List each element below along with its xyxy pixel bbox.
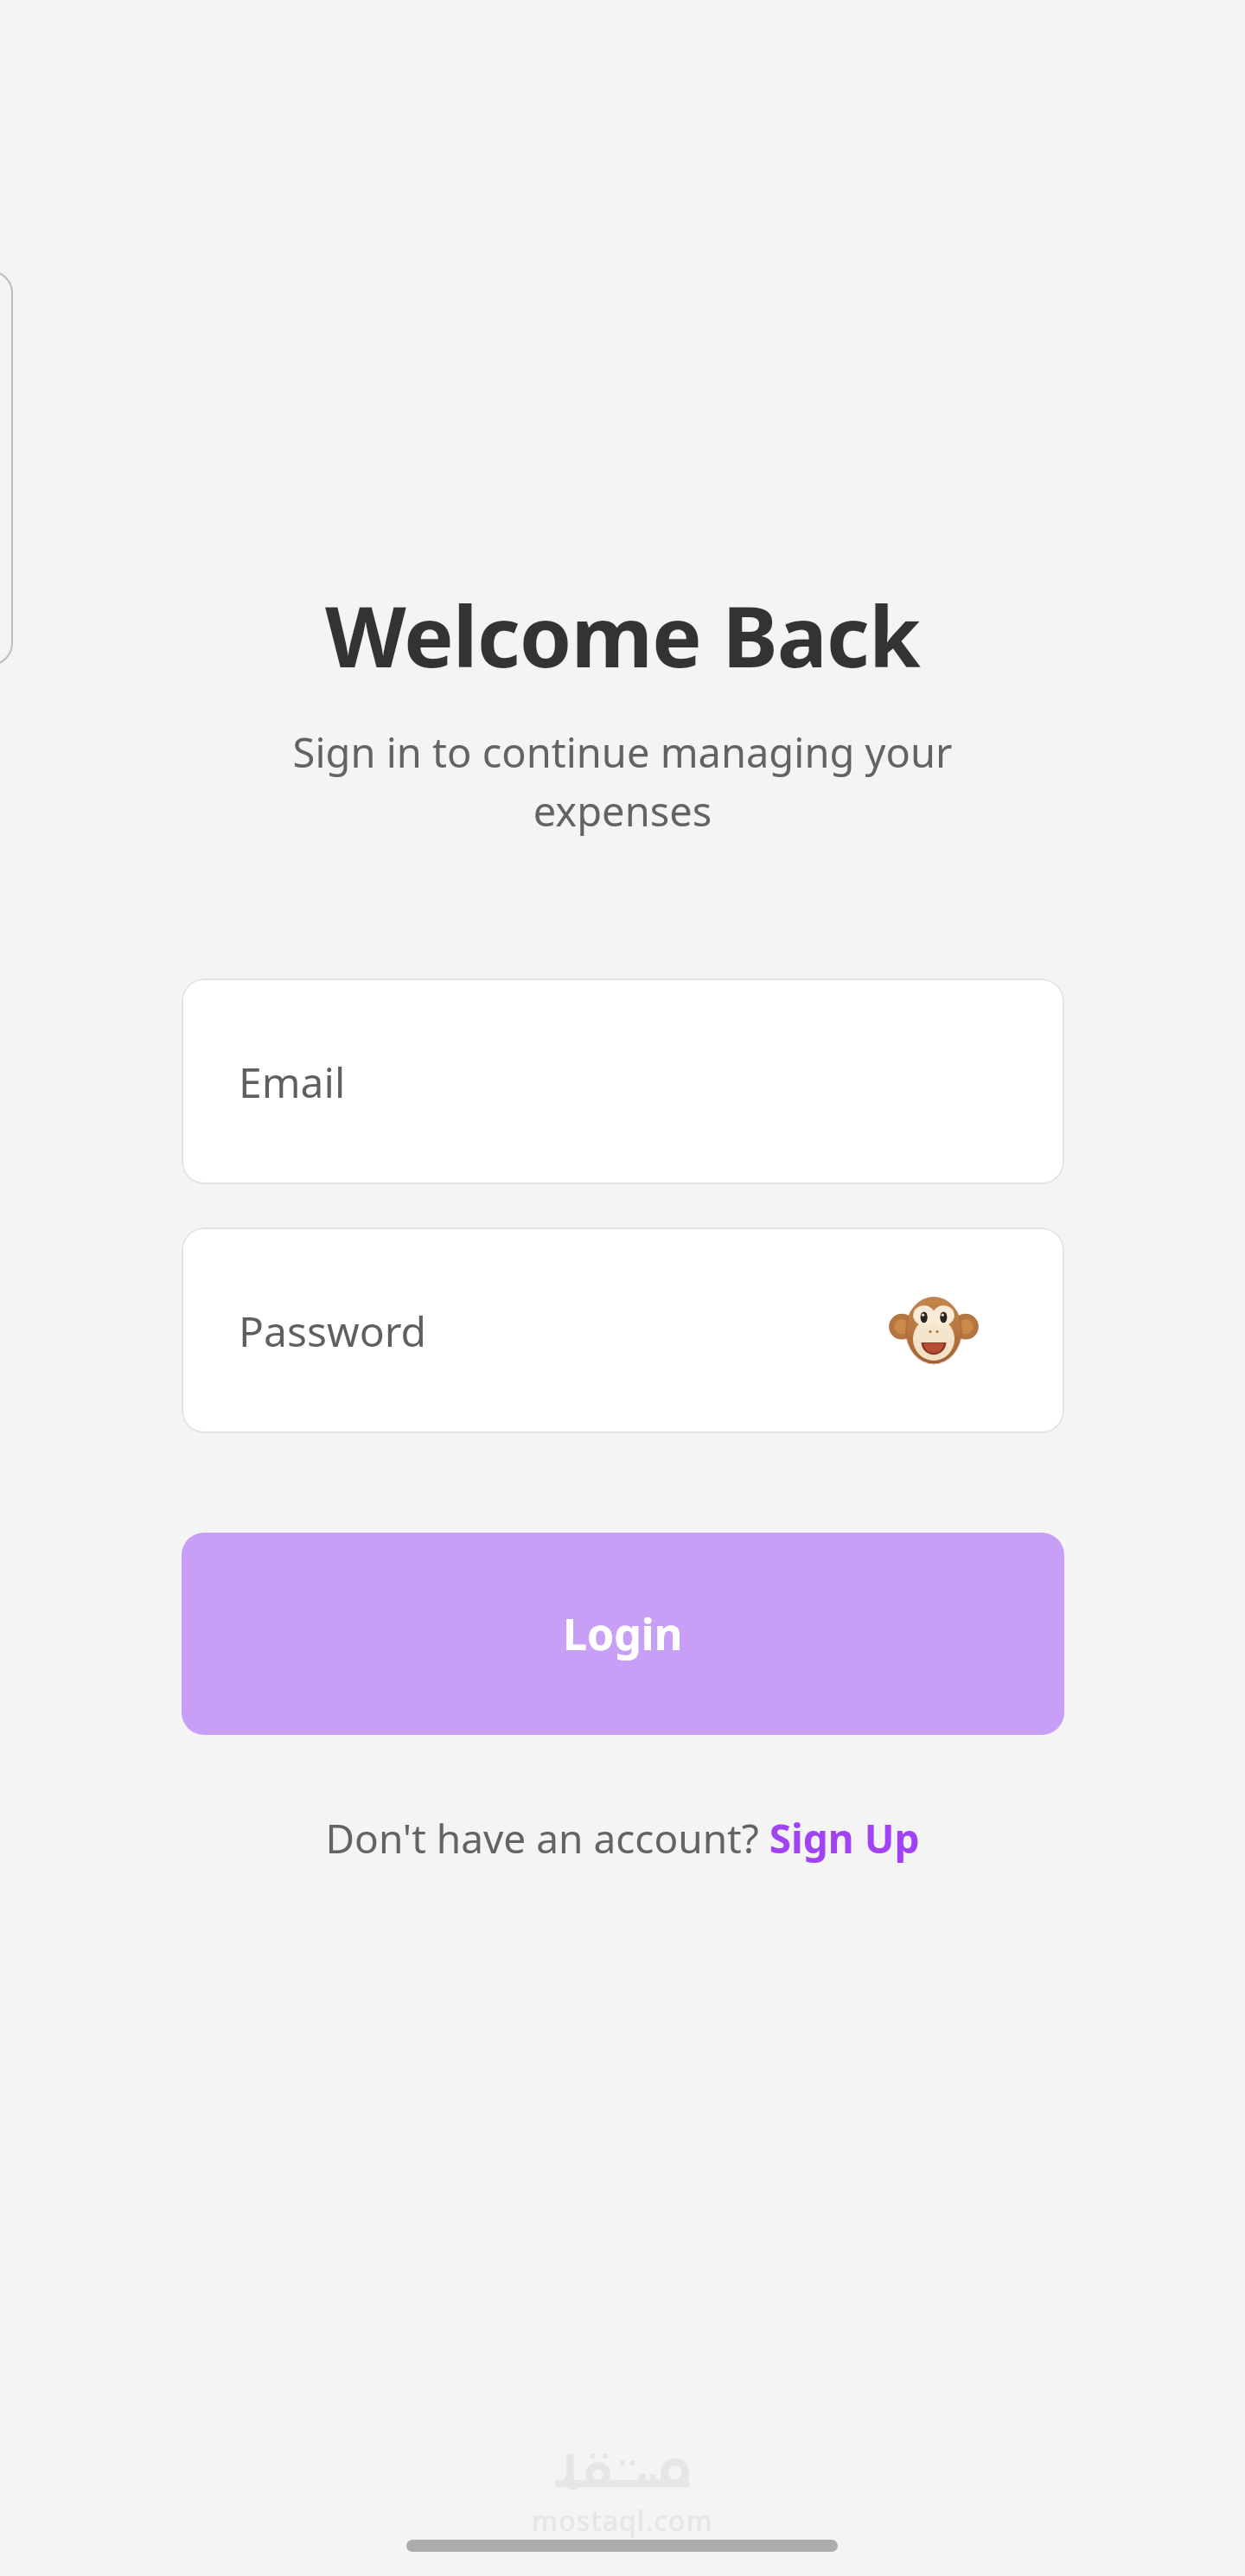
staticText: Email: [239, 1054, 346, 1110]
staticText: Password: [239, 1303, 427, 1359]
staticText: Welcome Back: [325, 577, 920, 692]
staticText: Sign in to continue managing your expens…: [216, 724, 1029, 838]
staticText: mostaql.com: [532, 2502, 713, 2540]
staticText: Don't have an account? Sign Up: [325, 1811, 920, 1865]
button[interactable]: Password: [182, 1227, 1064, 1433]
button[interactable]: Don't have an account? Sign Up: [304, 1802, 941, 1874]
button[interactable]: Login: [182, 1533, 1064, 1735]
staticText: Login: [563, 1604, 683, 1663]
button[interactable]: Email: [182, 979, 1064, 1184]
button[interactable]: Toggle password visibility: [887, 1284, 980, 1377]
